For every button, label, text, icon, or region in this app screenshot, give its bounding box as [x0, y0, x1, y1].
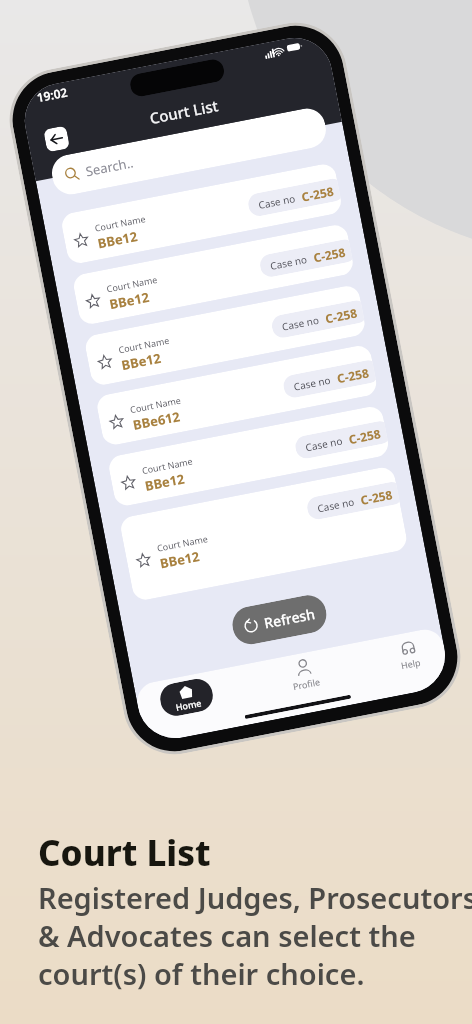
staticText: BBe12 — [158, 547, 201, 572]
staticText: C-258 — [335, 364, 371, 386]
button[interactable]: Back — [43, 125, 70, 152]
button[interactable]: Case no — [270, 299, 365, 340]
staticText: C-258 — [324, 304, 359, 326]
button[interactable]: Home — [157, 676, 216, 719]
staticText: Court Name — [105, 273, 159, 295]
staticText: Court Name — [117, 334, 171, 355]
staticText: Case no — [316, 494, 356, 515]
button[interactable]: Case no — [293, 420, 388, 460]
button[interactable]: Court Name — [95, 344, 379, 447]
staticText: Court Name — [94, 212, 147, 234]
staticText: BBe12 — [143, 469, 186, 495]
button[interactable]: Case no — [282, 359, 376, 399]
staticText: BBe12 — [120, 349, 162, 374]
staticText: Court List — [38, 829, 211, 877]
staticText: Court Name — [129, 394, 182, 415]
button[interactable]: Refresh — [229, 592, 330, 647]
button[interactable]: Court Name — [119, 465, 409, 602]
button[interactable]: Court Name — [83, 284, 367, 387]
staticText: C-258 — [347, 425, 383, 447]
button[interactable]: Case no — [258, 239, 353, 279]
button[interactable]: Help — [372, 633, 446, 676]
staticText: Court Name — [141, 454, 194, 476]
staticText: Case no — [304, 433, 344, 454]
button[interactable]: Court Name — [107, 404, 390, 508]
staticText: Case no — [269, 252, 309, 273]
staticText: Home — [175, 696, 202, 713]
button[interactable]: Court Name — [72, 223, 355, 326]
button[interactable]: Profile — [267, 652, 342, 696]
staticText: C-258 — [359, 486, 394, 508]
button[interactable]: Court Name — [60, 162, 343, 265]
staticText: Case no — [281, 313, 321, 334]
staticText: BBe12 — [108, 288, 151, 313]
staticText: C-258 — [312, 243, 347, 265]
staticText: Help — [400, 656, 422, 671]
button[interactable]: Search.. — [49, 105, 329, 198]
button[interactable]: Case no — [246, 178, 341, 218]
staticText: Search.. — [84, 153, 136, 180]
staticText: Refresh — [262, 604, 317, 633]
staticText: 19:02 — [35, 84, 69, 105]
staticText: C-258 — [300, 183, 335, 205]
staticText: Case no — [292, 373, 332, 394]
staticText: Court Name — [156, 532, 209, 554]
staticText: BBe612 — [131, 407, 182, 434]
staticText: Case no — [257, 191, 297, 212]
staticText: BBe12 — [96, 227, 139, 252]
staticText: Registered Judges, Prosecutors & Advocat… — [38, 878, 472, 993]
staticText: Court List — [148, 95, 220, 128]
button[interactable]: Case no — [305, 481, 400, 521]
staticText: Profile — [292, 675, 322, 692]
